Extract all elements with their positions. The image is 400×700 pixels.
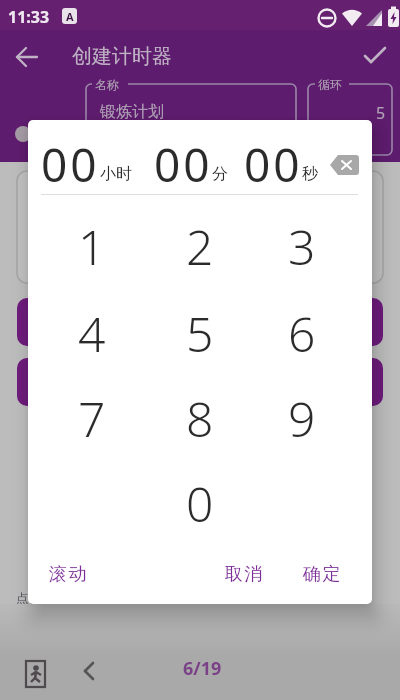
staticText: 00 <box>244 133 303 196</box>
button[interactable] <box>358 42 390 70</box>
staticText: 8 <box>186 386 214 451</box>
staticText: 0 <box>186 471 214 536</box>
button[interactable]: 滚动 <box>39 556 95 592</box>
staticText: 2 <box>186 214 214 279</box>
button[interactable]: 取消 <box>215 556 271 592</box>
staticText: 1 <box>78 214 106 279</box>
button[interactable]: 9 <box>262 383 342 453</box>
staticText: 创建计时器 <box>72 44 172 69</box>
staticText: 名称 <box>95 77 119 92</box>
button[interactable]: 1 <box>52 211 132 281</box>
button[interactable]: 4 <box>52 298 132 368</box>
staticText: 5 <box>186 301 214 366</box>
staticText: 00 <box>154 133 213 196</box>
staticText: 循环 <box>318 77 342 92</box>
staticText: 滚动 <box>48 563 87 586</box>
staticText: 分 <box>212 164 228 184</box>
staticText: 5 <box>376 102 386 124</box>
button[interactable]: 0 <box>160 468 240 538</box>
staticText: 00 <box>41 133 100 196</box>
staticText: 取消 <box>224 563 263 586</box>
button[interactable] <box>325 148 365 182</box>
button[interactable]: 5 <box>160 298 240 368</box>
staticText: 锻炼计划 <box>100 102 164 122</box>
button[interactable]: 2 <box>160 211 240 281</box>
button[interactable] <box>20 655 52 691</box>
staticText: 7 <box>78 386 106 451</box>
staticText: 11:33 <box>8 6 50 28</box>
button[interactable]: 7 <box>52 383 132 453</box>
staticText: 4 <box>78 301 106 366</box>
staticText: 9 <box>288 386 316 451</box>
staticText: 点击 <box>16 590 42 606</box>
button[interactable] <box>17 298 383 346</box>
button[interactable] <box>78 660 102 682</box>
button[interactable]: 3 <box>262 211 342 281</box>
staticText: 秒 <box>302 164 318 184</box>
staticText: 6 <box>288 301 316 366</box>
staticText: 确定 <box>302 563 341 586</box>
button[interactable] <box>8 44 48 70</box>
button[interactable] <box>17 358 383 406</box>
button[interactable]: 确定 <box>293 556 349 592</box>
button[interactable]: 6 <box>262 298 342 368</box>
staticText: 小时 <box>100 164 132 184</box>
button[interactable]: 8 <box>160 383 240 453</box>
staticText: 3 <box>288 214 316 279</box>
staticText: 6/19 <box>183 656 222 681</box>
staticText: A <box>66 9 74 24</box>
